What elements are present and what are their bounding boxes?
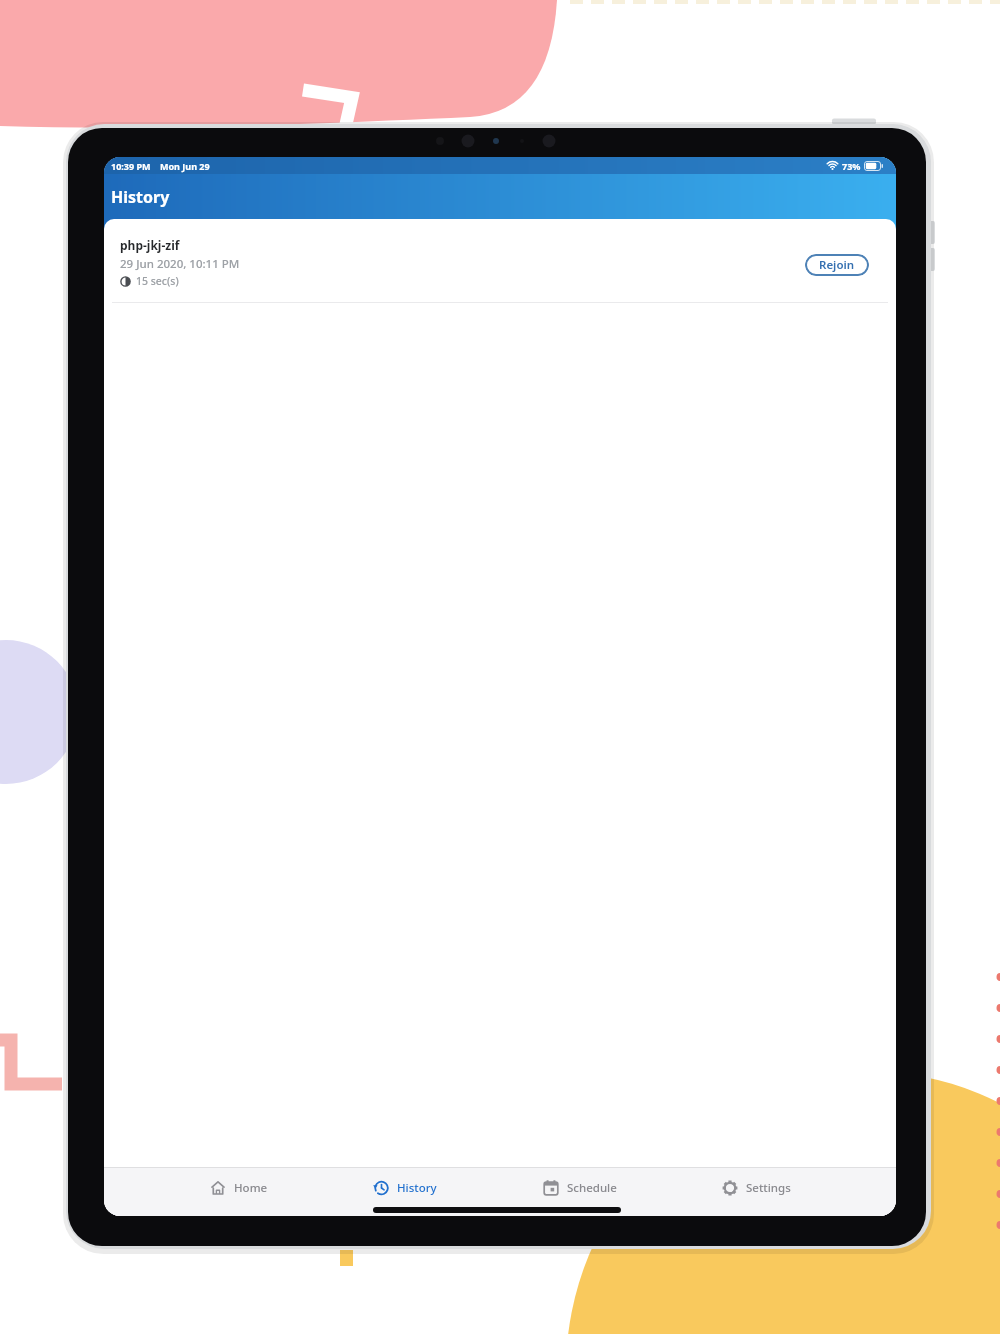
staticText: 29 Jun 2020, 10:11 PM bbox=[120, 256, 240, 272]
button[interactable]: Home bbox=[209, 1179, 268, 1197]
staticText: Settings bbox=[746, 1180, 791, 1196]
button[interactable]: History bbox=[372, 1179, 437, 1197]
staticText: History bbox=[111, 186, 170, 208]
staticText: Mon Jun 29 bbox=[160, 160, 210, 172]
button[interactable]: Schedule bbox=[542, 1179, 617, 1197]
staticText: History bbox=[397, 1180, 437, 1196]
staticText: 10:39 PM bbox=[111, 160, 151, 172]
staticText: Home bbox=[234, 1180, 268, 1196]
button[interactable]: Settings bbox=[721, 1179, 791, 1197]
staticText: Rejoin bbox=[819, 257, 855, 273]
staticText: 15 sec(s) bbox=[136, 274, 179, 288]
staticText: Schedule bbox=[567, 1180, 617, 1196]
staticText: 73% bbox=[842, 160, 861, 172]
staticText: php-jkj-zif bbox=[120, 237, 180, 253]
button[interactable]: Rejoin bbox=[805, 254, 869, 276]
